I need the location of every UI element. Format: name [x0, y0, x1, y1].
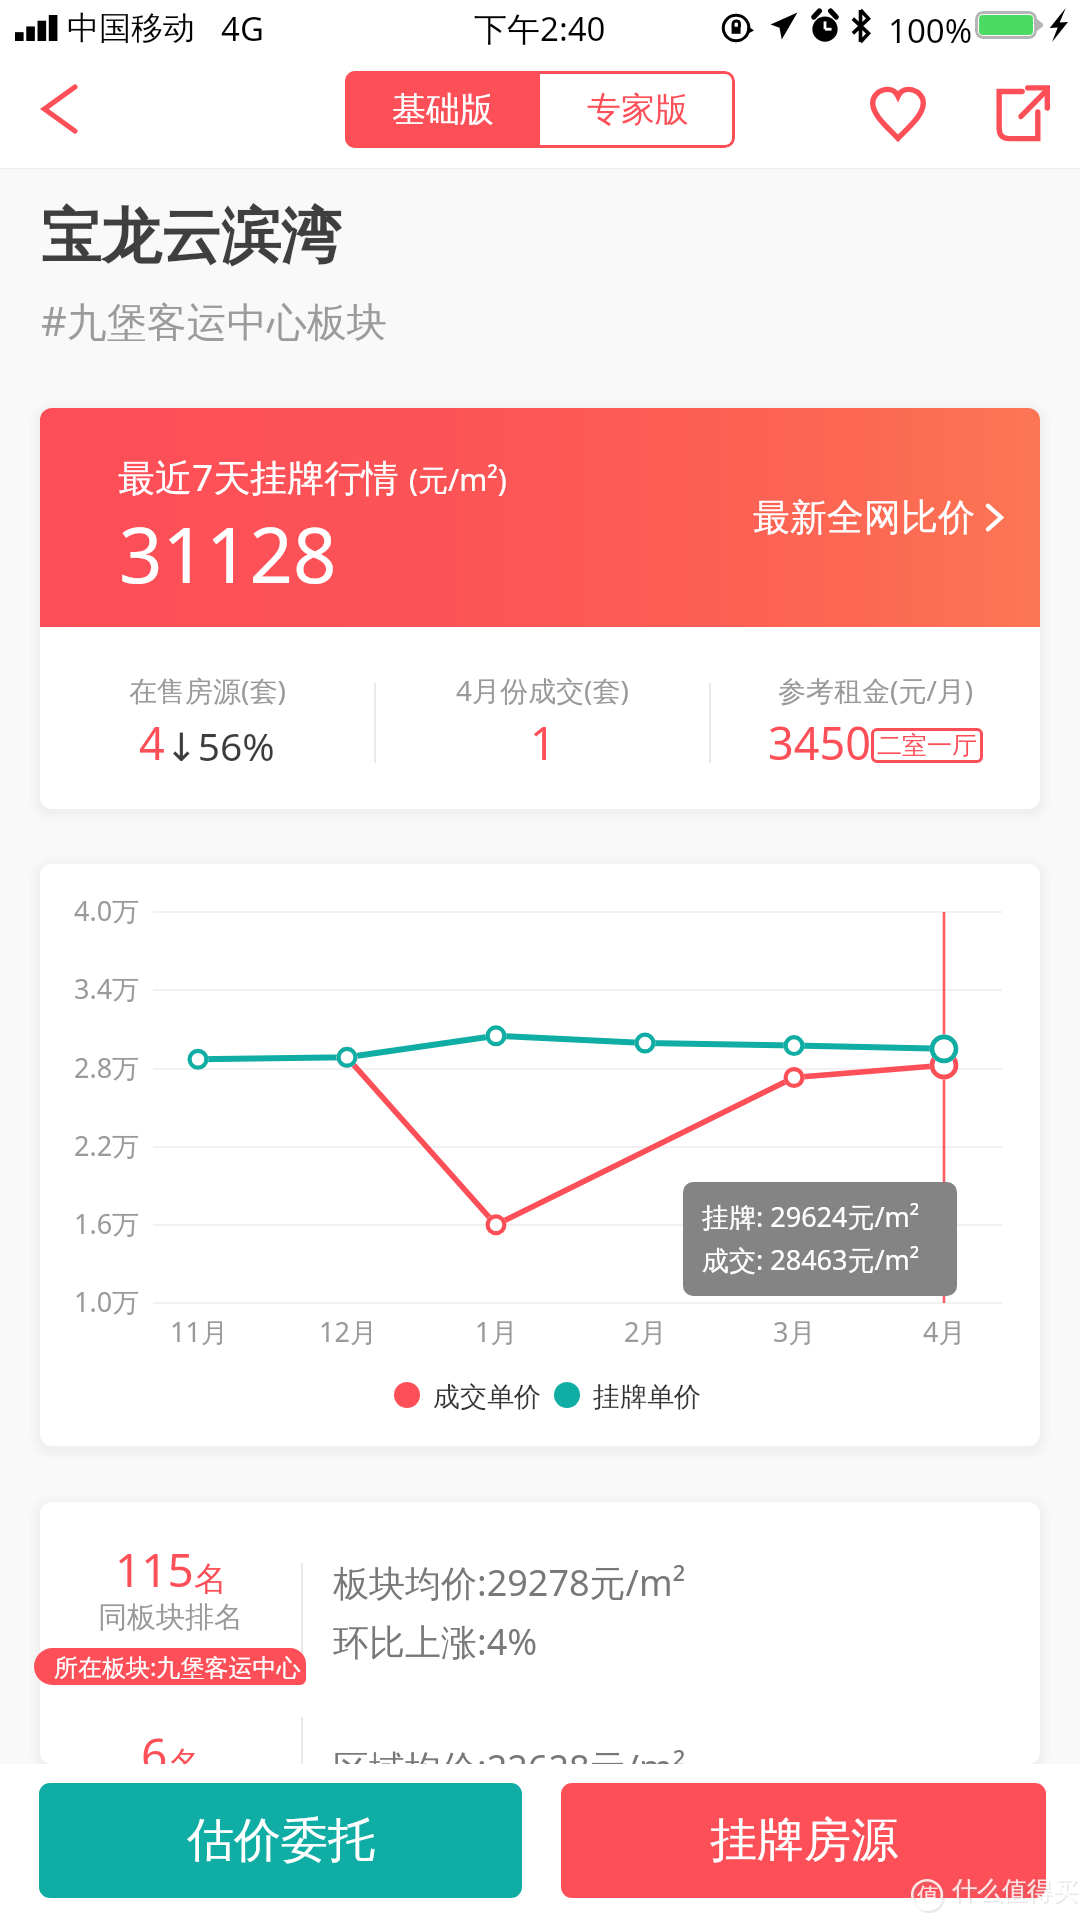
staticText: 1	[530, 712, 556, 773]
staticText: 宝龙云滨湾	[41, 199, 341, 275]
staticText: 名	[194, 1558, 227, 1600]
staticText: 成交: 28463元/m²	[702, 1241, 920, 1278]
staticText: 同板块排名	[98, 1599, 243, 1636]
button[interactable]: 估价委托	[39, 1783, 522, 1898]
staticText: 挂牌单价	[593, 1380, 701, 1414]
staticText: 1.0万	[74, 1283, 140, 1320]
button[interactable]: 基础版	[345, 71, 540, 148]
staticText: 115	[115, 1538, 194, 1601]
staticText: 所在板块:九堡客运中心	[54, 1650, 301, 1683]
button[interactable]: 最新全网比价	[753, 494, 1004, 541]
staticText: 2.8万	[74, 1049, 140, 1086]
button[interactable]: Back	[12, 61, 106, 157]
staticText: 11月	[170, 1313, 228, 1350]
staticText: 最新全网比价	[753, 494, 975, 541]
staticText: 12月	[319, 1313, 377, 1350]
staticText: 3450	[768, 712, 871, 773]
staticText: 挂牌房源	[710, 1811, 898, 1870]
staticText: 二室一厅	[877, 730, 977, 761]
staticText: 什么值得买	[952, 1875, 1077, 1906]
staticText: 2.2万	[74, 1127, 140, 1164]
staticText: 4月份成交(套)	[456, 671, 629, 709]
staticText: 估价委托	[187, 1811, 375, 1870]
staticText: 基础版	[392, 88, 494, 131]
staticText: 100%	[888, 8, 973, 53]
button[interactable]: Favourite	[846, 63, 950, 161]
staticText: 1.6万	[74, 1205, 140, 1242]
staticText: 名	[168, 1743, 201, 1764]
staticText: 区域均价:22628元/m²	[333, 1743, 686, 1764]
staticText: 中国移动	[67, 8, 195, 48]
staticText: 4月	[923, 1313, 966, 1350]
staticText: 4	[139, 712, 165, 773]
staticText: 最近7天挂牌行情	[118, 451, 399, 502]
staticText: 成交单价	[433, 1380, 541, 1414]
staticText: 挂牌: 29624元/m²	[702, 1198, 920, 1235]
staticText: (元/m²)	[409, 459, 507, 500]
staticText: 3.4万	[74, 970, 140, 1007]
staticText: 在售房源(套)	[129, 671, 286, 709]
staticText: 板块均价:29278元/m²	[333, 1558, 686, 1607]
staticText: 什么值得买	[954, 1877, 1079, 1908]
staticText: 4G	[221, 6, 264, 51]
staticText: 1月	[475, 1313, 518, 1350]
button[interactable]: 专家版	[540, 71, 735, 148]
staticText: 下午2:40	[474, 6, 606, 51]
staticText: 值	[917, 1882, 939, 1910]
staticText: 4.0万	[74, 892, 140, 929]
staticText: 3月	[773, 1313, 816, 1350]
staticText: #九堡客运中心板块	[41, 293, 387, 348]
staticText: 31128	[119, 502, 337, 606]
staticText: 2月	[624, 1313, 667, 1350]
staticText: ↓56%	[165, 719, 275, 772]
staticText: 6	[141, 1723, 168, 1764]
staticText: 环比上涨:4%	[333, 1617, 538, 1666]
staticText: 参考租金(元/月)	[778, 671, 974, 709]
button[interactable]: 挂牌房源	[561, 1783, 1046, 1898]
staticText: 专家版	[587, 88, 689, 131]
button[interactable]: Share	[969, 63, 1073, 161]
